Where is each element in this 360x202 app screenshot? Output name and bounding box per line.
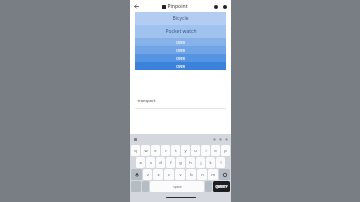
button[interactable]: space: [150, 181, 204, 192]
button[interactable]: n: [197, 169, 207, 180]
staticText: c: [168, 172, 170, 177]
staticText: k: [209, 160, 212, 165]
staticText: r: [165, 148, 167, 153]
staticText: QWERTY: [215, 185, 228, 189]
staticText: j: [200, 160, 202, 165]
button[interactable]: x: [153, 169, 163, 180]
button[interactable]: k: [206, 157, 215, 168]
button[interactable]: i: [201, 145, 210, 156]
staticText: x: [157, 172, 160, 177]
button[interactable]: Pocket watch: [135, 25, 226, 38]
staticText: OVER: [176, 64, 185, 69]
button[interactable]: r: [161, 145, 170, 156]
button[interactable]: Bicycle: [135, 12, 226, 25]
button[interactable]: h: [186, 157, 195, 168]
staticText: m: [211, 172, 215, 177]
button[interactable]: Suggestion: [217, 136, 223, 142]
button[interactable]: OVER: [135, 46, 226, 54]
button[interactable]: s: [146, 157, 155, 168]
staticText: Pinpoint: [167, 3, 188, 10]
staticText: b: [190, 172, 193, 177]
button[interactable]: f: [166, 157, 175, 168]
staticText: OVER: [176, 40, 185, 45]
button[interactable]: o: [211, 145, 220, 156]
button[interactable]: a: [136, 157, 145, 168]
button[interactable]: Navigate up: [132, 2, 140, 10]
staticText: space: [173, 185, 182, 189]
staticText: u: [194, 148, 197, 153]
staticText: t: [175, 148, 177, 153]
staticText: z: [147, 172, 149, 177]
button[interactable]: Help: [211, 2, 220, 11]
button[interactable]: Suggestion: [223, 136, 229, 142]
button[interactable]: Backspace: [219, 169, 230, 180]
staticText: d: [159, 160, 162, 165]
staticText: Bicycle: [172, 15, 189, 22]
staticText: n: [201, 172, 204, 177]
staticText: transport: [137, 98, 156, 103]
button[interactable]: g: [176, 157, 185, 168]
button[interactable]: OVER: [135, 54, 226, 62]
button[interactable]: b: [186, 169, 196, 180]
button[interactable]: p: [221, 145, 230, 156]
button[interactable]: j: [196, 157, 205, 168]
button[interactable]: OVER: [135, 62, 226, 70]
button[interactable]: z: [143, 169, 152, 180]
staticText: l: [220, 160, 222, 165]
button[interactable]: QWERTY: [213, 181, 230, 192]
staticText: OVER: [176, 56, 185, 61]
staticText: OVER: [176, 48, 185, 53]
button[interactable]: d: [156, 157, 165, 168]
button[interactable]: Voice input: [132, 136, 139, 143]
staticText: i: [205, 148, 207, 153]
button[interactable]: q: [131, 145, 140, 156]
button[interactable]: t: [171, 145, 180, 156]
staticText: g: [179, 160, 182, 165]
staticText: p: [224, 148, 227, 153]
staticText: w: [144, 148, 148, 153]
staticText: v: [179, 172, 182, 177]
staticText: o: [214, 148, 217, 153]
button[interactable]: v: [175, 169, 185, 180]
button[interactable]: e: [151, 145, 160, 156]
staticText: a: [139, 160, 142, 165]
staticText: q: [134, 148, 137, 153]
staticText: h: [189, 160, 192, 165]
button[interactable]: More options: [220, 2, 229, 11]
staticText: e: [154, 148, 157, 153]
button[interactable]: l: [216, 157, 225, 168]
button[interactable]: Shift: [131, 169, 142, 180]
staticText: y: [184, 148, 187, 153]
button[interactable]: Period: [205, 181, 212, 192]
button[interactable]: c: [164, 169, 174, 180]
button[interactable]: Comma: [142, 181, 149, 192]
button[interactable]: OVER: [135, 38, 226, 46]
staticText: Pocket watch: [165, 28, 197, 35]
button[interactable]: y: [181, 145, 190, 156]
button[interactable]: Suggestion: [211, 136, 217, 142]
button[interactable]: u: [191, 145, 200, 156]
staticText: f: [170, 160, 172, 165]
staticText: s: [150, 160, 152, 165]
button[interactable]: m: [208, 169, 218, 180]
button[interactable]: w: [141, 145, 150, 156]
